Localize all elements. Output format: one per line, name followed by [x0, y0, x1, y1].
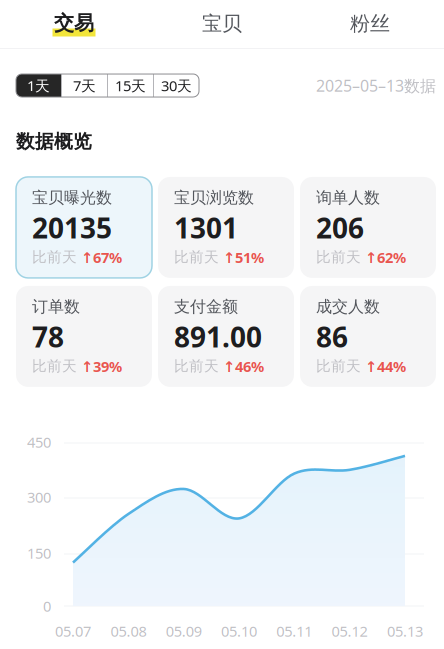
staticText: 78: [32, 318, 64, 355]
button[interactable]: 订单数: [16, 286, 152, 387]
staticText: 支付金额: [174, 297, 238, 317]
staticText: 比前天: [174, 357, 223, 375]
staticText: 数据概览: [16, 130, 92, 153]
button[interactable]: 支付金额: [158, 286, 294, 387]
staticText: 比前天: [32, 248, 81, 266]
staticText: 交易: [54, 11, 94, 35]
button[interactable]: 7天: [62, 74, 107, 97]
staticText: 2025–05–13数据: [316, 75, 436, 96]
staticText: 150: [27, 543, 51, 563]
staticText: 300: [27, 487, 51, 507]
staticText: ↑44%: [365, 356, 406, 376]
staticText: 7天: [73, 76, 96, 95]
staticText: 1301: [174, 209, 238, 246]
button[interactable]: 询单人数: [300, 177, 436, 278]
staticText: ↑62%: [365, 247, 406, 267]
staticText: ↑67%: [81, 247, 122, 267]
staticText: 05.13: [387, 621, 423, 641]
staticText: 05.11: [276, 621, 312, 641]
staticText: 询单人数: [316, 188, 380, 208]
button[interactable]: 粉丝: [296, 0, 444, 48]
staticText: ↑39%: [81, 356, 122, 376]
staticText: 比前天: [174, 248, 223, 266]
staticText: ↑51%: [223, 247, 264, 267]
staticText: 206: [316, 209, 364, 246]
staticText: ↑46%: [223, 356, 264, 376]
staticText: 比前天: [316, 357, 365, 375]
staticText: 成交人数: [316, 297, 380, 317]
staticText: 订单数: [32, 297, 80, 317]
staticText: 05.07: [55, 621, 91, 641]
staticText: 比前天: [32, 357, 81, 375]
button[interactable]: 宝贝曝光数: [16, 177, 152, 278]
staticText: 1天: [27, 76, 50, 95]
button[interactable]: 交易: [0, 0, 148, 48]
staticText: 比前天: [316, 248, 365, 266]
staticText: 891.00: [174, 318, 262, 355]
button[interactable]: 宝贝: [148, 0, 296, 48]
staticText: 宝贝浏览数: [174, 188, 254, 208]
staticText: 宝贝: [202, 11, 242, 36]
staticText: 05.12: [332, 621, 368, 641]
staticText: 粉丝: [350, 11, 390, 36]
staticText: 15天: [115, 76, 146, 95]
staticText: 86: [316, 318, 348, 355]
button[interactable]: 1天: [16, 74, 61, 97]
button[interactable]: 30天: [154, 74, 199, 97]
staticText: 05.09: [166, 621, 202, 641]
staticText: 05.08: [110, 621, 146, 641]
staticText: 0: [43, 596, 51, 616]
staticText: 450: [27, 432, 51, 452]
button[interactable]: 成交人数: [300, 286, 436, 387]
staticText: 05.10: [221, 621, 257, 641]
staticText: 20135: [32, 209, 112, 246]
button[interactable]: 宝贝浏览数: [158, 177, 294, 278]
button[interactable]: 15天: [108, 74, 153, 97]
staticText: 宝贝曝光数: [32, 188, 112, 208]
staticText: 30天: [161, 76, 192, 95]
